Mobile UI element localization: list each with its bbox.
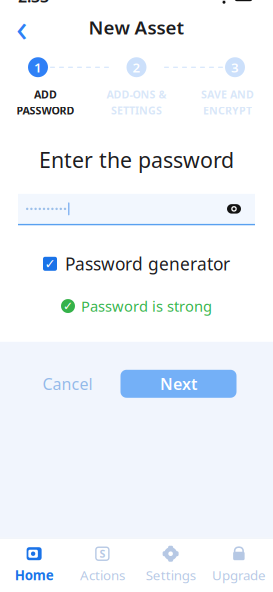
- staticText: SAVE AND: [201, 87, 254, 101]
- staticText: ADD: [34, 87, 57, 101]
- button[interactable]: Back: [6, 11, 38, 43]
- staticText: 1: [34, 58, 42, 76]
- staticText: Home: [15, 566, 54, 584]
- staticText: ‹: [16, 2, 28, 52]
- staticText: Actions: [80, 566, 125, 584]
- button[interactable]: Settings: [136, 547, 205, 583]
- staticText: Upgrade: [212, 566, 266, 584]
- staticText: 2:33: [18, 0, 49, 7]
- staticText: Password generator: [65, 252, 230, 275]
- staticText: Next: [160, 373, 197, 394]
- staticText: ENCRYPT: [203, 103, 252, 118]
- button[interactable]: Cancel: [36, 370, 98, 398]
- staticText: Settings: [146, 566, 196, 584]
- button[interactable]: Show password: [221, 196, 247, 222]
- staticText: 3: [231, 58, 239, 76]
- staticText: Cancel: [42, 373, 92, 394]
- staticText: S: [99, 547, 105, 561]
- staticText: ✓: [63, 299, 73, 313]
- staticText: SETTINGS: [111, 103, 162, 118]
- button[interactable]: S: [68, 547, 136, 583]
- staticText: Enter the password: [39, 146, 234, 174]
- staticText: Password is strong: [81, 296, 212, 316]
- button[interactable]: Upgrade: [205, 547, 273, 583]
- button[interactable]: Home: [0, 547, 68, 583]
- button[interactable]: Next: [120, 370, 236, 398]
- staticText: New Asset: [88, 15, 184, 40]
- button[interactable]: ✓: [37, 247, 236, 280]
- staticText: ADD-ONS &: [106, 87, 166, 101]
- staticText: PASSWORD: [16, 103, 74, 118]
- staticText: 2: [132, 58, 140, 76]
- staticText: ✓: [44, 256, 55, 271]
